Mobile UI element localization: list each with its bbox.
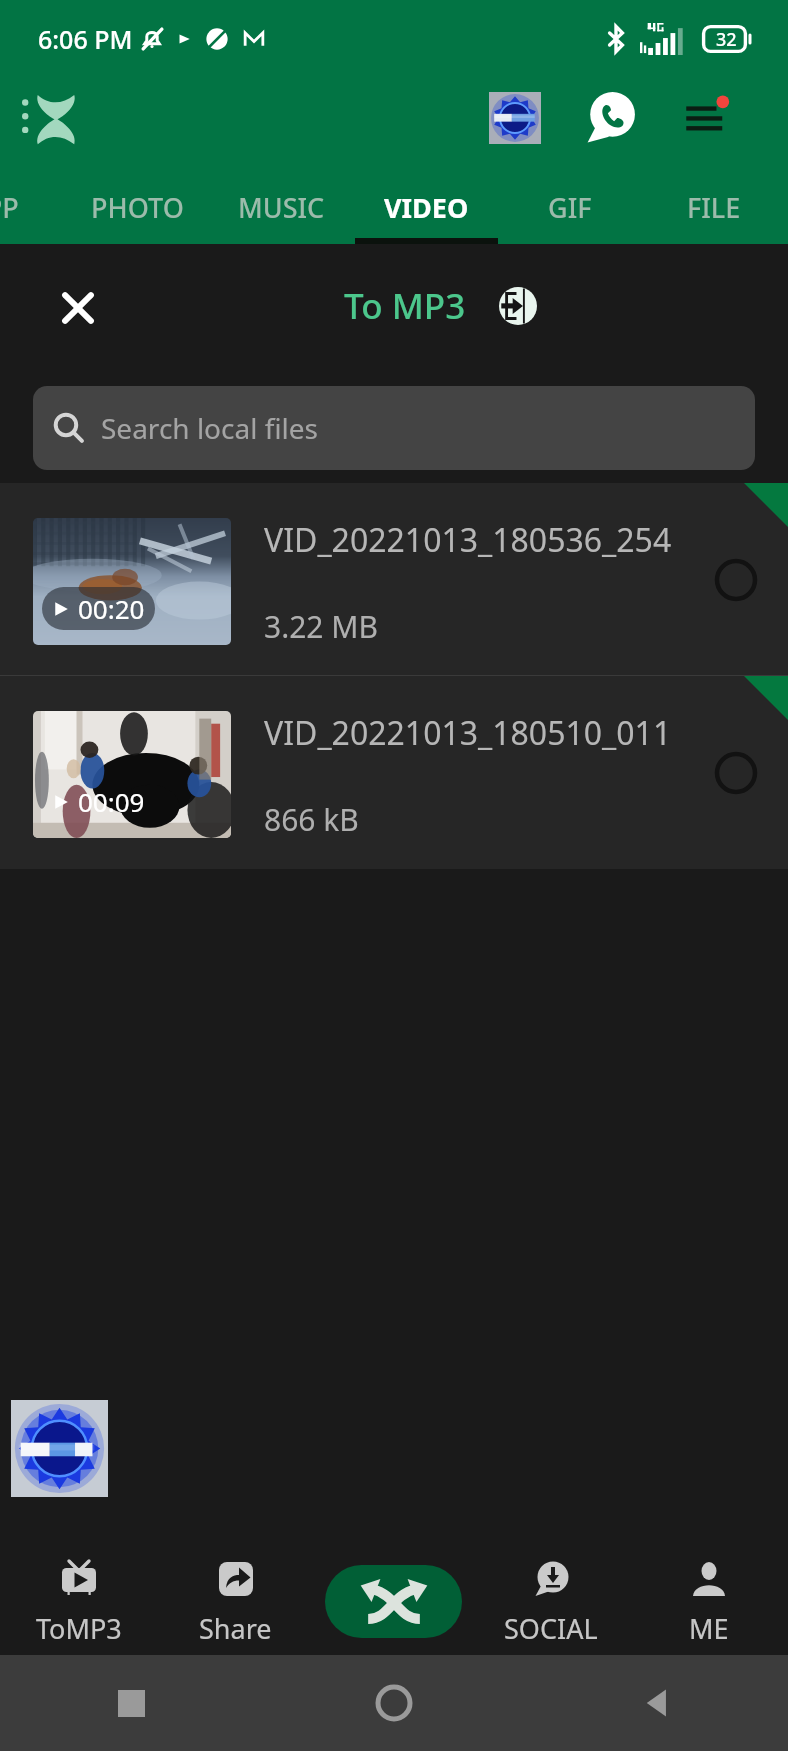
button[interactable]: ME xyxy=(630,1540,788,1660)
staticText: GIF xyxy=(548,189,592,226)
staticText: PHOTO xyxy=(91,189,184,226)
staticText: 32 xyxy=(716,27,737,52)
button[interactable]: MUSIC xyxy=(209,170,353,244)
button[interactable]: APP xyxy=(0,170,65,244)
staticText: VIDEO xyxy=(384,189,469,226)
button[interactable]: Back xyxy=(631,1677,683,1729)
staticText: VID_20221013_180536_254 xyxy=(264,518,672,562)
button[interactable]: 00:09 xyxy=(0,676,788,869)
staticText: VID_20221013_180510_011 xyxy=(264,711,672,755)
button[interactable]: VIDEO xyxy=(354,170,498,244)
button[interactable]: 00:20 xyxy=(0,483,788,676)
button[interactable]: ToMP3 xyxy=(0,1540,157,1660)
staticText: 6:06 PM xyxy=(38,22,133,56)
staticText: MUSIC xyxy=(238,189,325,226)
button[interactable]: Transfer xyxy=(325,1565,462,1638)
button[interactable]: Select xyxy=(706,743,766,803)
staticText: ToMP3 xyxy=(36,1610,122,1647)
staticText: 3.22 MB xyxy=(264,606,379,647)
staticText: ME xyxy=(689,1610,729,1647)
button[interactable]: FILE xyxy=(642,170,786,244)
staticText: 00:09 xyxy=(78,784,145,819)
button[interactable]: Menu xyxy=(676,88,736,148)
staticText: 866 kB xyxy=(264,799,359,840)
button[interactable]: 1xBet xyxy=(489,92,541,144)
staticText: SOCIAL xyxy=(504,1610,598,1647)
button[interactable]: 1xBet ad xyxy=(11,1400,108,1497)
button[interactable]: SOCIAL xyxy=(472,1540,630,1660)
button[interactable]: Home xyxy=(366,1675,422,1731)
button[interactable]: Xender xyxy=(18,82,94,158)
staticText: FILE xyxy=(687,189,741,226)
staticText: To MP3 xyxy=(344,282,466,330)
button[interactable]: Search local files xyxy=(33,386,755,470)
button[interactable]: Share xyxy=(157,1540,314,1660)
staticText: APP xyxy=(0,189,19,226)
button[interactable]: Recents xyxy=(105,1677,157,1729)
button[interactable]: WhatsApp xyxy=(584,90,638,144)
button[interactable]: GIF xyxy=(498,170,642,244)
staticText: Search local files xyxy=(101,409,319,447)
staticText: 00:20 xyxy=(78,591,145,626)
button[interactable]: Close xyxy=(50,280,106,336)
staticText: Share xyxy=(199,1610,272,1647)
button[interactable]: PHOTO xyxy=(65,170,209,244)
button[interactable]: Select xyxy=(706,550,766,610)
